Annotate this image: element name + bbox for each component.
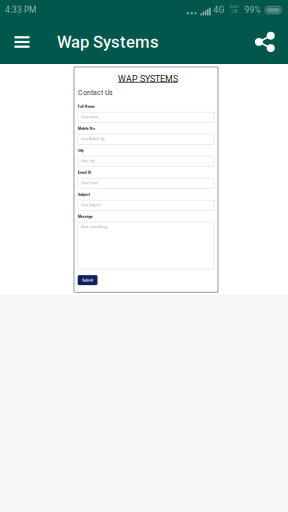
button[interactable]: Menu	[7, 20, 37, 64]
staticText: Message	[78, 214, 93, 218]
staticText: Wap Systems	[57, 32, 159, 52]
staticText: Email ID	[78, 170, 91, 174]
staticText: Mobile No.	[78, 126, 96, 130]
staticText: Write something..	[81, 225, 109, 229]
staticText: Contact Us	[78, 89, 113, 97]
staticText: Subject	[78, 192, 90, 196]
staticText: VoLTE	[230, 5, 239, 8]
button[interactable]: Submit	[78, 275, 97, 285]
staticText: Your Subject..	[81, 203, 103, 207]
staticText: Your name..	[81, 115, 100, 119]
staticText: 4:33 PM	[5, 5, 36, 15]
staticText: City	[78, 148, 84, 152]
staticText: Submit	[82, 278, 93, 282]
staticText: Full Name	[78, 104, 95, 108]
staticText: WAP SYSTEMS	[118, 74, 178, 84]
button[interactable]: Share	[250, 20, 280, 64]
staticText: 99%	[244, 5, 260, 15]
staticText: Your city..	[81, 159, 96, 163]
staticText: Your Email	[81, 181, 98, 185]
staticText: Your Mobile No.	[81, 137, 106, 141]
staticText: 4G	[213, 5, 224, 15]
staticText: LTE	[231, 9, 237, 14]
